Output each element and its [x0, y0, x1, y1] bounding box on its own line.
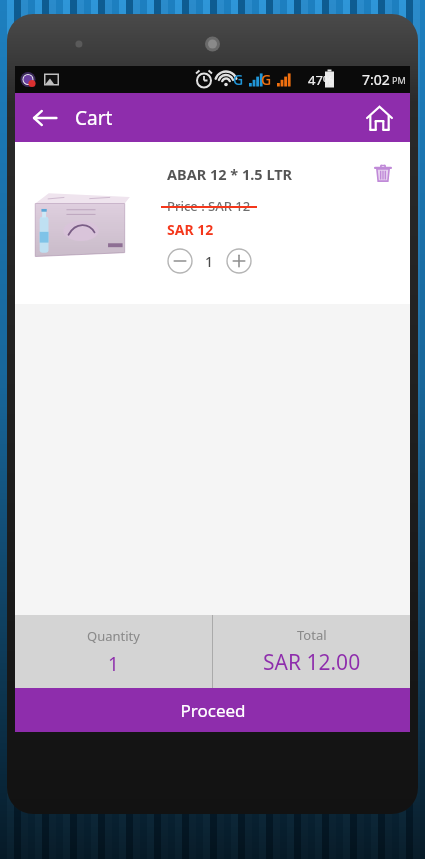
button[interactable]: Proceed — [15, 688, 410, 732]
staticText: Price : SAR 12 — [167, 197, 251, 215]
staticText: PM — [392, 74, 406, 86]
staticText: Proceed — [180, 699, 246, 722]
button[interactable]: ABAR 12 * 1.5 LTR — [15, 142, 410, 304]
staticText: 1 — [205, 252, 214, 271]
button[interactable]: Decrease quantity — [167, 248, 193, 274]
button[interactable]: Delete item — [366, 156, 400, 190]
staticText: SAR 12.00 — [263, 648, 361, 677]
staticText: Cart — [75, 105, 113, 131]
button[interactable]: Back — [25, 98, 65, 138]
staticText: 47% — [308, 71, 334, 89]
staticText: ABAR 12 * 1.5 LTR — [167, 164, 293, 184]
button[interactable]: Increase quantity — [226, 248, 252, 274]
staticText: G — [261, 70, 272, 89]
staticText: Total — [297, 626, 327, 644]
staticText: 7:02 — [362, 70, 390, 89]
staticText: 1 — [108, 651, 119, 677]
button[interactable]: Home — [358, 97, 400, 139]
staticText: SAR 12 — [167, 220, 214, 239]
staticText: Quantity — [87, 627, 140, 645]
staticText: G — [233, 70, 244, 89]
